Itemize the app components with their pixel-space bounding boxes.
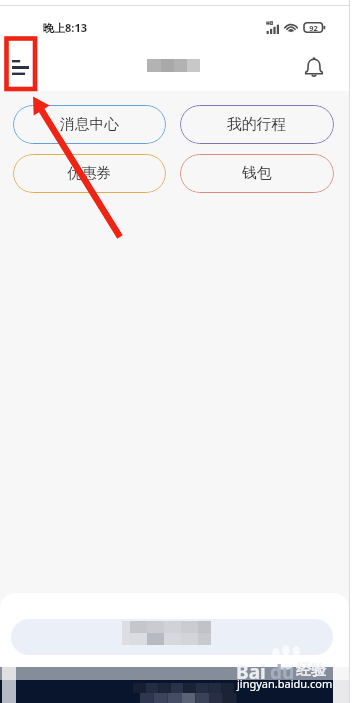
- staticText: 经验: [296, 661, 326, 680]
- button[interactable]: 我的行程: [180, 105, 334, 144]
- staticText: 我的行程: [227, 115, 287, 134]
- staticText: 优惠券: [67, 164, 112, 183]
- staticText: du: [270, 659, 295, 685]
- button[interactable]: Menu: [5, 44, 35, 90]
- button[interactable]: [11, 619, 333, 655]
- button[interactable]: 优惠券: [13, 154, 166, 193]
- staticText: jingyan.baidu.com: [237, 676, 333, 691]
- staticText: 钱包: [242, 164, 272, 183]
- staticText: 92: [309, 23, 318, 33]
- staticText: Bai: [236, 659, 266, 685]
- button[interactable]: 消息中心: [13, 105, 166, 144]
- staticText: 晚上8:13: [43, 20, 87, 35]
- button[interactable]: Notifications: [297, 50, 331, 84]
- button[interactable]: 钱包: [180, 154, 334, 193]
- staticText: 消息中心: [60, 115, 120, 134]
